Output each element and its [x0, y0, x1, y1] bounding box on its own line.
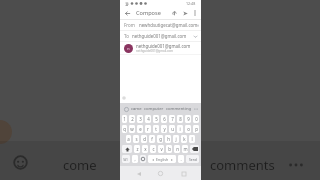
button[interactable]: commenting [166, 106, 192, 112]
staticText: Compose [136, 9, 161, 17]
button[interactable]: computer [144, 106, 164, 112]
staticText: z [136, 146, 139, 152]
button[interactable]: Send [181, 9, 190, 18]
staticText: d [143, 136, 146, 142]
button[interactable]: Attach file [170, 9, 179, 18]
staticText: 0 [195, 116, 198, 122]
button[interactable]: a [126, 135, 131, 143]
button[interactable]: n [124, 42, 198, 54]
button[interactable]: 5 [153, 115, 159, 123]
staticText: 8 [179, 116, 182, 122]
button[interactable]: Recent apps [179, 169, 188, 178]
staticText: c [152, 146, 155, 152]
staticText: k [183, 136, 186, 142]
button[interactable]: i [177, 125, 183, 133]
button[interactable]: l [189, 135, 195, 143]
button[interactable]: came [131, 106, 142, 112]
staticText: n [176, 146, 179, 152]
button[interactable]: To [124, 31, 198, 41]
staticText: g [159, 136, 162, 142]
button[interactable]: Voice input [123, 106, 129, 112]
staticText: From [124, 22, 135, 28]
staticText: 5 [155, 116, 158, 122]
staticText: !#1 [123, 157, 129, 162]
button[interactable]: Back [134, 169, 143, 178]
button[interactable]: comments [210, 156, 275, 174]
button[interactable]: More options [286, 155, 306, 175]
button[interactable]: k [181, 135, 187, 143]
button[interactable]: v [158, 145, 164, 153]
staticText: 4 [147, 116, 150, 122]
button[interactable]: f [149, 135, 155, 143]
button[interactable]: j [173, 135, 179, 143]
button[interactable]: o [185, 125, 191, 133]
button[interactable]: h [165, 135, 171, 143]
button[interactable]: 9 [185, 115, 191, 123]
button[interactable]: Home [156, 169, 165, 178]
button[interactable]: u [169, 125, 175, 133]
staticText: w [130, 126, 134, 132]
button[interactable]: g [157, 135, 163, 143]
staticText: q [123, 126, 126, 132]
button[interactable]: n [174, 145, 180, 153]
staticText: p [195, 126, 198, 132]
button[interactable]: 8 [177, 115, 183, 123]
button[interactable]: Send [186, 155, 199, 163]
button[interactable]: Emoji [140, 155, 146, 163]
staticText: , [134, 156, 136, 162]
button[interactable]: 4 [145, 115, 151, 123]
button[interactable]: z [134, 145, 140, 153]
staticText: 6 [163, 116, 166, 122]
button[interactable]: More suggestions [193, 106, 198, 111]
staticText: English [156, 157, 169, 162]
button[interactable]: d [141, 135, 147, 143]
staticText: nethguide001@gmail.com [136, 43, 191, 49]
button[interactable]: e [137, 125, 143, 133]
button[interactable]: English [148, 155, 176, 163]
button[interactable]: x [142, 145, 148, 153]
staticText: t [155, 126, 157, 132]
button[interactable]: 2 [129, 115, 135, 123]
button[interactable]: come [63, 156, 97, 174]
button[interactable]: y [161, 125, 167, 133]
staticText: b [168, 146, 171, 152]
staticText: r [147, 126, 149, 132]
button[interactable]: r [145, 125, 151, 133]
staticText: nethguide001@gmail.com [136, 49, 174, 53]
button[interactable]: 1 [122, 115, 127, 123]
staticText: 9 [187, 116, 190, 122]
button[interactable]: m [182, 145, 188, 153]
staticText: o [187, 126, 190, 132]
staticText: newhdsutigecat@gmail.com [139, 22, 198, 28]
button[interactable]: 7 [169, 115, 175, 123]
button[interactable]: Profile avatar [10, 152, 30, 172]
button[interactable]: . [178, 155, 184, 163]
button[interactable]: p [193, 125, 199, 133]
staticText: y [163, 126, 166, 132]
staticText: Send [189, 157, 197, 162]
button[interactable]: s [133, 135, 139, 143]
button[interactable]: Back [123, 9, 132, 18]
button[interactable]: w [129, 125, 135, 133]
staticText: e [139, 126, 142, 132]
staticText: j [175, 136, 177, 142]
button[interactable]: b [166, 145, 172, 153]
button[interactable]: 6 [161, 115, 167, 123]
button[interactable]: t [153, 125, 159, 133]
button[interactable]: 3 [137, 115, 143, 123]
staticText: . [180, 156, 182, 162]
button[interactable]: Shift [122, 145, 132, 153]
button[interactable]: c [150, 145, 156, 153]
staticText: 7 [171, 116, 174, 122]
button[interactable]: Backspace [190, 145, 199, 153]
button[interactable]: From [124, 20, 198, 30]
button[interactable]: q [122, 125, 127, 133]
staticText: u [171, 126, 174, 132]
button[interactable]: More options [191, 9, 199, 17]
button[interactable]: , [132, 155, 138, 163]
staticText: n [127, 46, 130, 52]
staticText: 1 [123, 116, 126, 122]
button[interactable]: 0 [193, 115, 199, 123]
staticText: x [144, 146, 147, 152]
button[interactable]: Symbols [122, 155, 130, 163]
